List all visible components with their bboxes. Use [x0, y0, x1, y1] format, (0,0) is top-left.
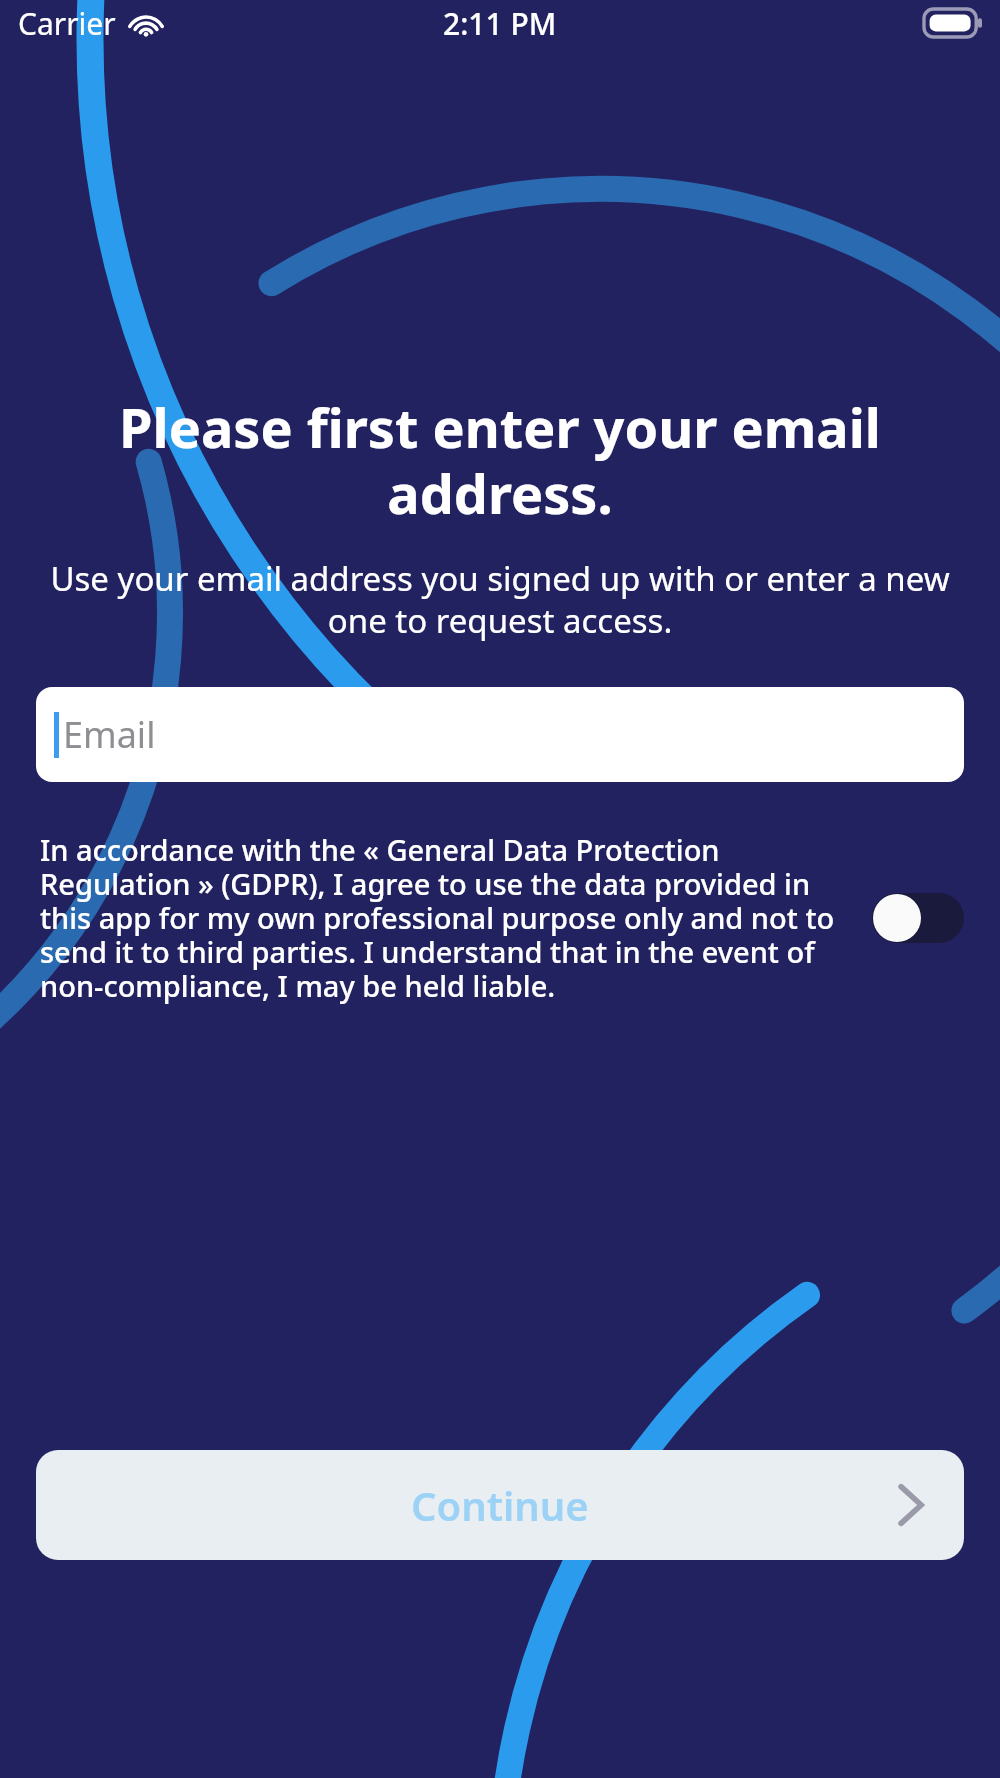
staticText: 2:11 PM — [443, 3, 557, 44]
staticText: In accordance with the « General Data Pr… — [40, 830, 848, 1005]
staticText: Continue — [411, 1478, 589, 1532]
staticText: Carrier — [18, 3, 116, 44]
button[interactable]: Email — [36, 687, 964, 782]
staticText: Email — [63, 710, 156, 759]
staticText: Please first enter your email address. — [40, 390, 960, 530]
button[interactable]: Accept GDPR terms — [872, 893, 964, 943]
staticText: Use your email address you signed up wit… — [36, 556, 964, 643]
button[interactable]: Continue — [36, 1450, 964, 1560]
